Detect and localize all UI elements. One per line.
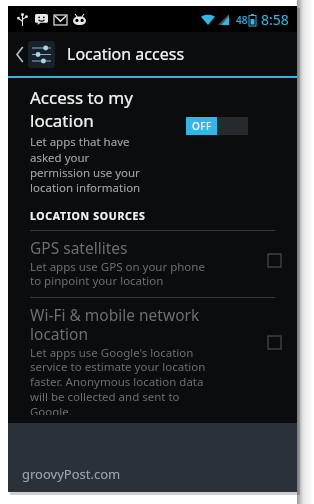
- button[interactable]: Access to my: [8, 86, 297, 199]
- staticText: OFF: [192, 119, 212, 133]
- staticText: 8:58: [261, 10, 289, 29]
- button[interactable]: Access to my location, off: [186, 117, 248, 135]
- staticText: Let apps that have asked your permission…: [30, 134, 141, 195]
- staticText: GPS satellites: [30, 237, 128, 258]
- staticText: LOCATION SOURCES: [30, 209, 146, 223]
- staticText: groovyPost.com: [22, 465, 121, 483]
- staticText: Access to my: [30, 86, 133, 109]
- button[interactable]: Navigate up: [13, 35, 58, 74]
- staticText: 48: [236, 13, 248, 27]
- staticText: Let apps use GPS on your phone to pinpoi…: [30, 259, 205, 289]
- staticText: Wi-Fi & mobile network location: [30, 304, 200, 344]
- button[interactable]: Wi-Fi & mobile network location: [8, 298, 297, 423]
- button[interactable]: GPS satellites: [8, 231, 297, 297]
- staticText: location: [30, 109, 94, 132]
- staticText: Location access: [67, 43, 185, 65]
- staticText: Let apps use Google's location service t…: [30, 345, 206, 415]
